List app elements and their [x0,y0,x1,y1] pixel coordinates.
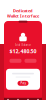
button[interactable]: Tab [15,98,20,100]
button[interactable]: Tab [5,98,10,100]
staticText: Total Balance [14,43,31,47]
button[interactable]: Tab [35,98,40,100]
staticText: $12,480.50 [9,48,36,55]
staticText: Wallet Interface [7,13,39,19]
button[interactable]: Tab [25,98,30,100]
button[interactable]: Action [24,59,36,63]
button[interactable]: Pay [17,81,28,86]
button[interactable]: Action [9,59,21,63]
staticText: Dedicated [13,8,33,13]
staticText: Pay [20,81,25,85]
